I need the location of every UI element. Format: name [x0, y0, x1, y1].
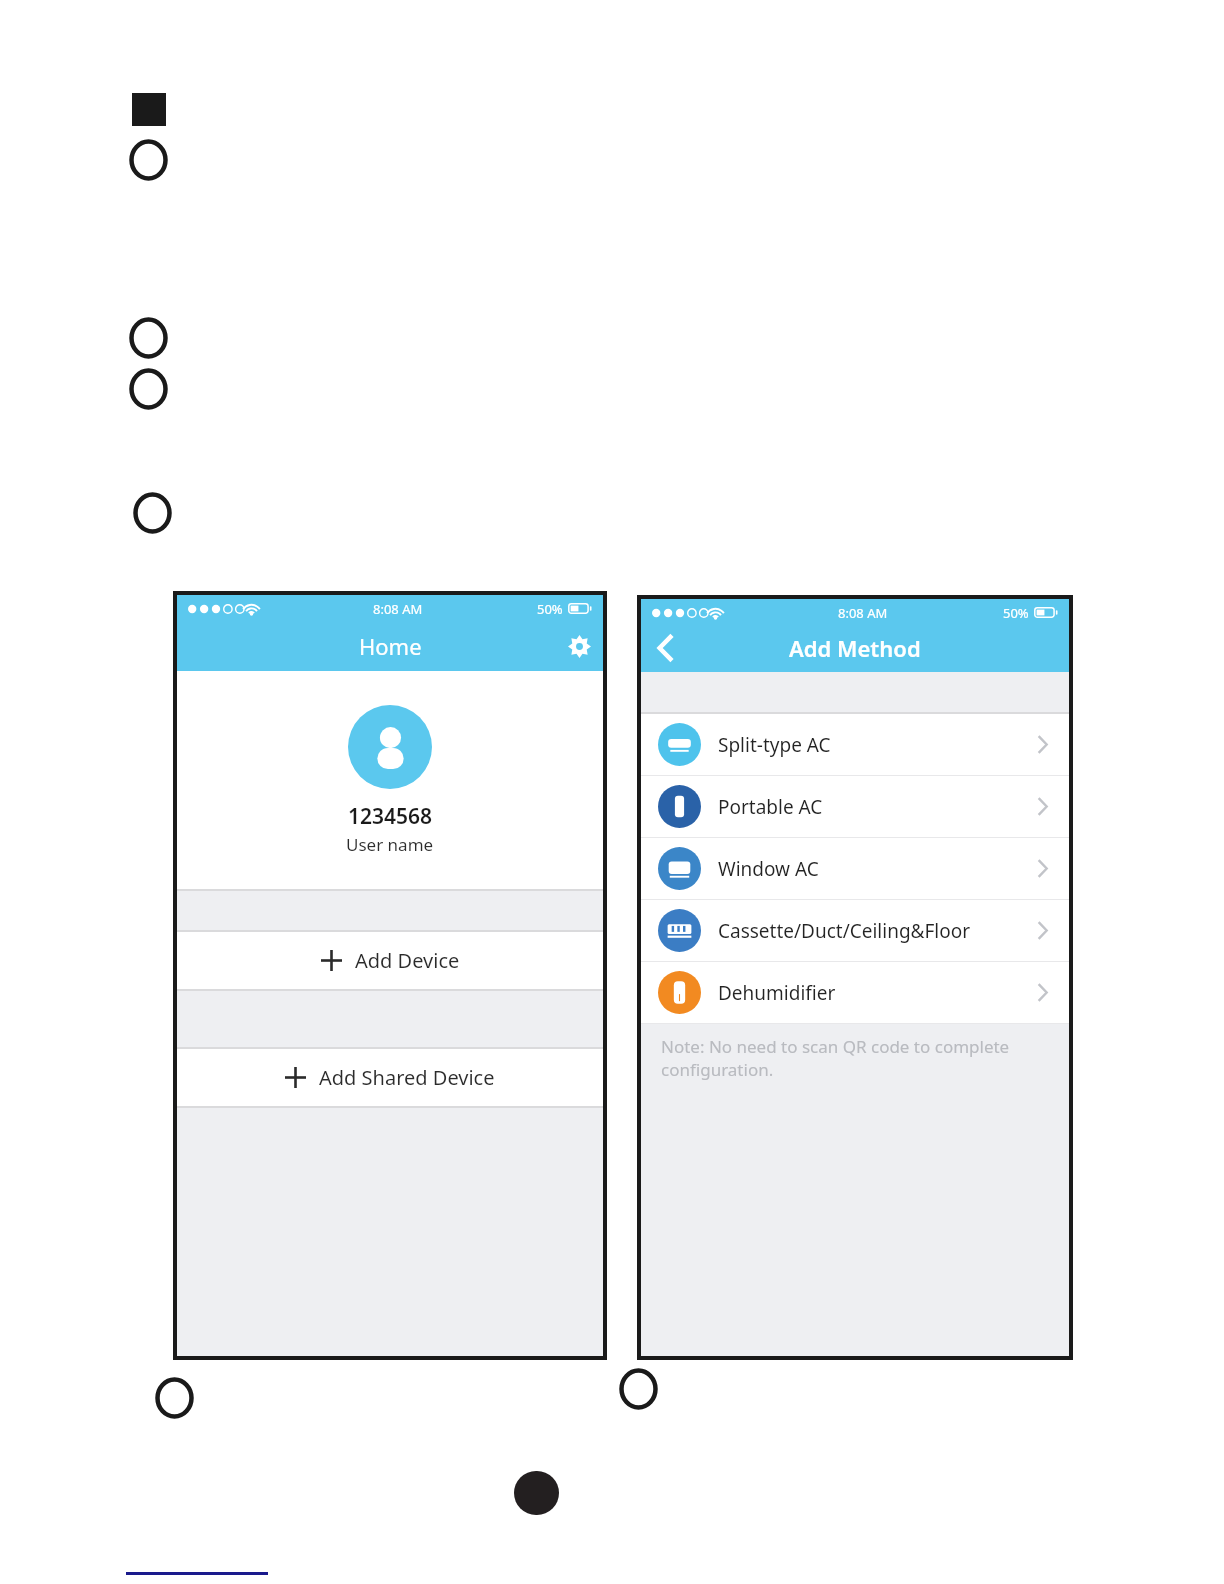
button[interactable]: Settings [555, 622, 603, 670]
button[interactable]: Add Shared Device [177, 1049, 603, 1106]
button[interactable]: Cassette/Duct/Ceiling&Floor [641, 900, 1069, 961]
staticText: 8:08 AM [373, 600, 423, 618]
staticText: Add Device [355, 947, 460, 974]
staticText: 1234568 [348, 802, 433, 831]
button[interactable]: Back [641, 623, 691, 673]
button[interactable]: Portable AC [641, 776, 1069, 837]
staticText: Portable AC [718, 794, 823, 820]
button[interactable]: Split-type AC [641, 714, 1069, 775]
staticText: Cassette/Duct/Ceiling&Floor [718, 918, 971, 944]
button[interactable]: Add Device [177, 932, 603, 989]
staticText: User name [346, 833, 434, 856]
staticText: 50% [537, 600, 563, 618]
button[interactable]: Window AC [641, 838, 1069, 899]
staticText: Dehumidifier [718, 980, 836, 1006]
staticText: 50% [1003, 604, 1029, 622]
staticText: Note: No need to scan QR code to complet… [661, 1035, 1010, 1081]
button[interactable]: Dehumidifier [641, 962, 1069, 1023]
staticText: Split-type AC [718, 732, 831, 758]
staticText: Add Shared Device [319, 1064, 495, 1091]
staticText: Home [359, 631, 422, 661]
staticText: Window AC [718, 856, 819, 882]
staticText: Add Method [789, 633, 921, 663]
staticText: 8:08 AM [838, 604, 888, 622]
